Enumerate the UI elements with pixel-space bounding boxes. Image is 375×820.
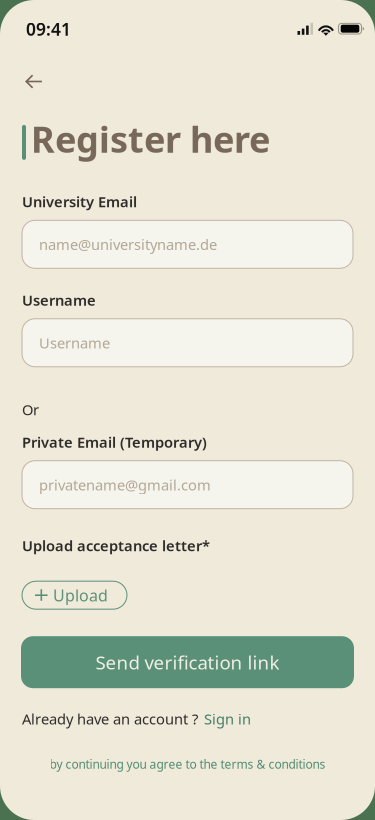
- staticText: Upload: [53, 585, 108, 606]
- staticText: Username: [39, 333, 110, 352]
- button[interactable]: Username: [22, 319, 353, 367]
- staticText: 09:41: [26, 17, 71, 40]
- staticText: Sign in: [204, 709, 251, 729]
- staticText: University Email: [22, 192, 137, 211]
- staticText: Private Email (Temporary): [22, 432, 207, 452]
- button[interactable]: name@universityname.de: [22, 220, 353, 268]
- staticText: Upload acceptance letter*: [22, 536, 210, 555]
- staticText: Username: [22, 290, 96, 310]
- staticText: name@universityname.de: [39, 234, 217, 254]
- button[interactable]: Upload: [22, 581, 127, 609]
- button[interactable]: Send verification link: [21, 636, 354, 688]
- staticText: by continuing you agree to the terms & c…: [49, 756, 325, 772]
- button[interactable]: privatename@gmail.com: [22, 461, 353, 509]
- staticText: Already have an account ?: [22, 709, 198, 729]
- button[interactable]: Sign in: [204, 709, 251, 729]
- staticText: privatename@gmail.com: [39, 475, 211, 494]
- staticText: Register here: [31, 115, 270, 163]
- button[interactable]: Back: [0, 58, 57, 97]
- staticText: Or: [22, 400, 39, 419]
- staticText: Send verification link: [95, 650, 279, 675]
